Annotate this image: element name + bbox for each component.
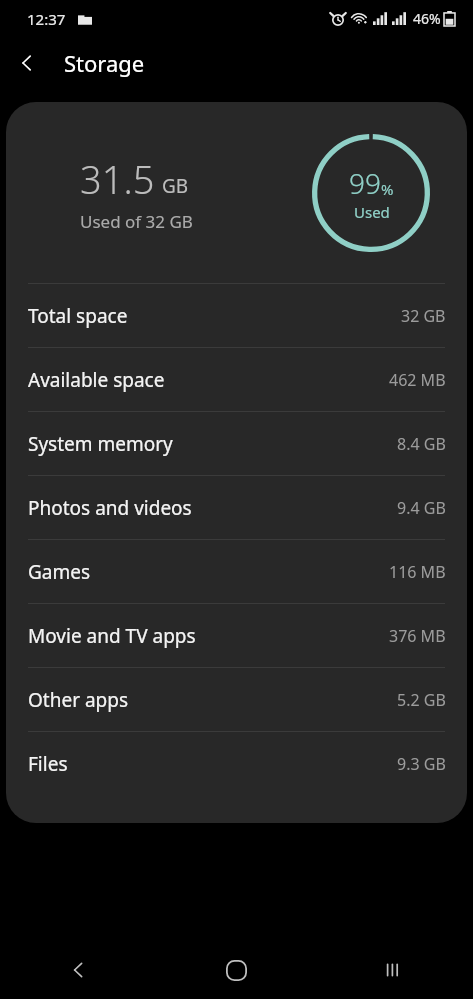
staticText: Total space bbox=[28, 303, 128, 329]
button[interactable]: Total space bbox=[6, 284, 467, 347]
staticText: Other apps bbox=[28, 687, 129, 713]
button[interactable]: Games bbox=[6, 540, 467, 603]
staticText: Movie and TV apps bbox=[28, 623, 196, 649]
button[interactable]: Recent apps bbox=[315, 941, 473, 999]
staticText: GB bbox=[162, 173, 189, 199]
button[interactable]: System memory bbox=[6, 412, 467, 475]
staticText: 46% bbox=[413, 9, 441, 28]
staticText: Used bbox=[354, 202, 390, 222]
staticText: 32 GB bbox=[401, 305, 446, 327]
button[interactable]: Back bbox=[0, 941, 157, 999]
staticText: 12:37 bbox=[27, 9, 66, 29]
staticText: Used of 32 GB bbox=[80, 210, 193, 233]
staticText: System memory bbox=[28, 431, 173, 457]
staticText: Files bbox=[28, 751, 68, 777]
staticText: Available space bbox=[28, 367, 165, 393]
staticText: 5.2 GB bbox=[397, 689, 446, 711]
staticText: 116 MB bbox=[389, 561, 446, 583]
button[interactable]: Files bbox=[6, 732, 467, 795]
button[interactable]: Available space bbox=[6, 348, 467, 411]
button[interactable]: Photos and videos bbox=[6, 476, 467, 539]
staticText: Storage bbox=[64, 48, 145, 78]
staticText: 9.3 GB bbox=[397, 753, 446, 775]
button[interactable]: Home bbox=[157, 941, 315, 999]
button[interactable]: Other apps bbox=[6, 668, 467, 731]
staticText: Games bbox=[28, 559, 91, 585]
staticText: 462 MB bbox=[389, 369, 446, 391]
staticText: 9.4 GB bbox=[397, 497, 446, 519]
staticText: 8.4 GB bbox=[397, 433, 446, 455]
staticText: Photos and videos bbox=[28, 495, 192, 521]
button[interactable]: Movie and TV apps bbox=[6, 604, 467, 667]
button[interactable]: Back bbox=[0, 37, 54, 89]
staticText: 376 MB bbox=[389, 625, 446, 647]
staticText: 31.5 bbox=[80, 153, 155, 205]
staticText: 99 bbox=[349, 164, 381, 202]
staticText: % bbox=[381, 179, 394, 199]
